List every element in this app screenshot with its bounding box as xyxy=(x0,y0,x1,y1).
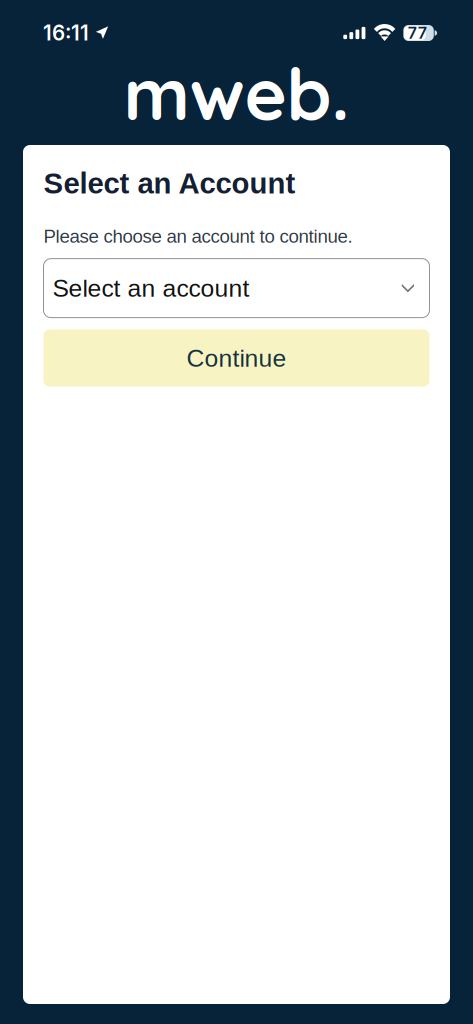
button[interactable]: Select an account xyxy=(43,259,429,318)
staticText: Continue xyxy=(186,344,286,372)
staticText: mweb. xyxy=(123,48,349,138)
staticText: Select an Account xyxy=(43,167,295,200)
button[interactable]: Continue xyxy=(43,330,429,387)
staticText: Select an account xyxy=(52,274,249,302)
staticText: 77 xyxy=(408,23,427,43)
staticText: 16:11 xyxy=(43,20,89,45)
staticText: Please choose an account to continue. xyxy=(43,226,352,247)
